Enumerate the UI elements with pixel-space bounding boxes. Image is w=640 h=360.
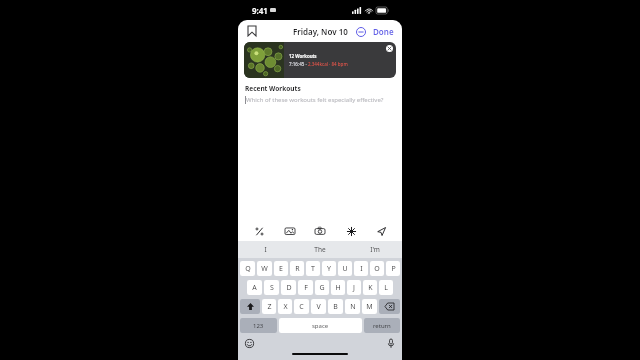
button[interactable]: Markup xyxy=(344,224,358,238)
button[interactable]: R xyxy=(290,261,304,276)
staticText: Y xyxy=(327,264,331,274)
button[interactable]: Remove attachment xyxy=(386,45,393,52)
button[interactable]: space xyxy=(279,318,362,333)
staticText: O xyxy=(374,264,380,274)
staticText: U xyxy=(342,264,348,274)
staticText: 9:41 xyxy=(252,5,268,16)
staticText: D xyxy=(286,283,292,293)
button[interactable]: M xyxy=(362,299,377,314)
button[interactable]: U xyxy=(338,261,352,276)
button[interactable]: The xyxy=(292,241,347,258)
staticText: A xyxy=(252,283,257,293)
staticText: 7:16:45 · 2,344kcal · 84 bpm xyxy=(289,61,348,67)
button[interactable]: A xyxy=(247,280,262,295)
staticText: 123 xyxy=(253,322,264,330)
staticText: B xyxy=(333,302,338,312)
button[interactable]: Y xyxy=(322,261,336,276)
button[interactable]: 123 xyxy=(240,318,277,333)
staticText: I xyxy=(264,245,267,254)
staticText: W xyxy=(261,264,268,274)
button[interactable]: Backspace xyxy=(379,299,400,314)
button[interactable]: Bookmark xyxy=(244,23,260,39)
button[interactable]: D xyxy=(281,280,296,295)
staticText: G xyxy=(319,283,325,293)
staticText: Recent Workouts xyxy=(245,84,301,93)
staticText: F xyxy=(304,283,308,293)
button[interactable]: T xyxy=(306,261,320,276)
staticText: Done xyxy=(373,26,394,37)
button[interactable]: Q xyxy=(240,261,255,276)
staticText: K xyxy=(368,283,373,293)
staticText: T xyxy=(311,264,315,274)
staticText: Z xyxy=(267,302,272,312)
button[interactable]: O xyxy=(370,261,384,276)
button[interactable]: W xyxy=(257,261,272,276)
staticText: V xyxy=(316,302,321,312)
button[interactable]: P xyxy=(386,261,400,276)
button[interactable]: I'm xyxy=(347,241,402,258)
staticText: M xyxy=(366,302,373,312)
button[interactable]: S xyxy=(264,280,279,295)
button[interactable]: Emoji xyxy=(243,337,255,349)
staticText: I'm xyxy=(370,245,380,254)
button[interactable]: C xyxy=(294,299,309,314)
staticText: Friday, Nov 10 xyxy=(293,26,348,37)
button[interactable]: I xyxy=(238,241,292,258)
button[interactable]: G xyxy=(315,280,329,295)
button[interactable]: V xyxy=(311,299,326,314)
button[interactable]: N xyxy=(345,299,360,314)
button[interactable]: H xyxy=(331,280,345,295)
button[interactable]: return xyxy=(364,318,400,333)
button[interactable]: B xyxy=(328,299,343,314)
staticText: N xyxy=(350,302,356,312)
button[interactable]: K xyxy=(363,280,377,295)
staticText: Q xyxy=(245,264,251,274)
staticText: E xyxy=(279,264,283,274)
button[interactable]: Shift xyxy=(240,299,260,314)
staticText: J xyxy=(353,283,355,293)
button[interactable]: E xyxy=(274,261,288,276)
staticText: C xyxy=(299,302,304,312)
staticText: R xyxy=(295,264,300,274)
staticText: The xyxy=(314,245,326,254)
button[interactable]: Dictate xyxy=(385,337,397,349)
button[interactable]: J xyxy=(347,280,361,295)
button[interactable]: Format xyxy=(252,224,266,238)
staticText: L xyxy=(384,283,388,293)
button[interactable]: F xyxy=(298,280,313,295)
staticText: S xyxy=(270,283,274,293)
button[interactable]: Done xyxy=(372,24,395,39)
staticText: return xyxy=(373,322,391,330)
button[interactable]: 12 Workouts xyxy=(244,42,396,78)
button[interactable]: Send xyxy=(374,224,388,238)
button[interactable]: Z xyxy=(262,299,276,314)
staticText: P xyxy=(391,264,396,274)
button[interactable]: Camera xyxy=(313,224,327,238)
staticText: I xyxy=(360,264,363,274)
staticText: X xyxy=(283,302,288,312)
staticText: H xyxy=(335,283,341,293)
button[interactable]: L xyxy=(379,280,393,295)
staticText: space xyxy=(312,322,329,330)
button[interactable]: X xyxy=(278,299,292,314)
staticText: Which of these workouts felt especially … xyxy=(246,96,384,104)
button[interactable]: I xyxy=(354,261,368,276)
button[interactable]: Photos xyxy=(283,224,297,238)
staticText: 12 Workouts xyxy=(289,53,317,59)
button[interactable]: More xyxy=(354,25,368,39)
